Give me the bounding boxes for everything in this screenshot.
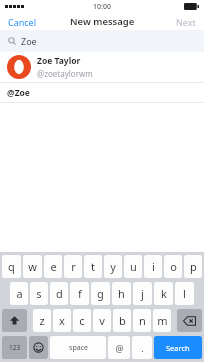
staticText: n [139,313,146,328]
button[interactable]: r [64,255,82,278]
button[interactable]: @Zoe [0,83,204,102]
button[interactable]: a [10,282,28,305]
staticText: e [50,259,57,274]
staticText: f [78,286,82,301]
button[interactable]: u [124,255,142,278]
button[interactable]: t [84,255,102,278]
staticText: @Zoe [7,87,30,99]
staticText: q [8,259,15,274]
button[interactable]: Next [168,14,204,30]
button[interactable]: j [133,282,152,305]
staticText: l [183,286,186,301]
staticText: New message [70,15,135,28]
button[interactable]: i [144,255,162,278]
button[interactable]: e [44,255,62,278]
staticText: Zoe [21,35,37,47]
staticText: z [39,313,45,328]
staticText: a [16,286,23,301]
staticText: o [170,259,177,274]
button[interactable]: b [113,309,131,332]
staticText: space [69,343,88,353]
staticText: x [59,313,65,328]
button[interactable]: p [184,255,202,278]
button[interactable]: Search [154,336,202,359]
staticText: @ [115,342,124,354]
button[interactable]: g [91,282,110,305]
button[interactable]: k [154,282,173,305]
staticText: 10:00 [93,2,111,12]
button[interactable]: Zoe [0,30,204,52]
button[interactable]: c [73,309,91,332]
staticText: w [28,259,37,274]
staticText: h [118,286,125,301]
button[interactable]: Cancel [0,14,45,30]
button[interactable]: z [33,309,51,332]
button[interactable]: h [112,282,131,305]
staticText: t [91,259,95,274]
button[interactable]: f [70,282,89,305]
staticText: 123 [9,343,21,352]
button[interactable]: y [104,255,122,278]
button[interactable]: v [93,309,111,332]
button[interactable]: . [132,336,152,359]
staticText: y [110,259,116,274]
button[interactable]: Zoe Taylor [0,52,204,82]
staticText: Cancel [8,16,37,28]
button[interactable]: 123 [2,336,27,359]
button[interactable]: q [2,255,21,278]
button[interactable]: l [175,282,194,305]
staticText: d [56,286,63,301]
button[interactable]: space [50,336,106,359]
button[interactable]: Shift [2,309,27,332]
button[interactable]: @ [108,336,130,359]
staticText: m [157,313,168,328]
staticText: b [119,313,126,328]
staticText: i [152,259,155,274]
staticText: p [190,259,197,274]
button[interactable]: x [53,309,71,332]
staticText: r [71,259,76,274]
staticText: v [99,313,105,328]
button[interactable]: m [153,309,171,332]
staticText: k [161,286,167,301]
button[interactable]: n [133,309,151,332]
staticText: g [97,286,104,301]
staticText: u [130,259,137,274]
staticText: c [79,313,85,328]
staticText: s [36,286,42,301]
staticText: . [141,342,144,354]
button[interactable]: s [30,282,48,305]
button[interactable]: o [164,255,182,278]
button[interactable]: Emoji [29,336,48,359]
button[interactable]: Backspace [177,309,202,332]
button[interactable]: d [50,282,68,305]
staticText: Next [176,16,196,28]
staticText: @zoetaylorwm [37,68,93,79]
button[interactable]: w [23,255,42,278]
staticText: Search [166,343,190,353]
staticText: j [141,286,144,301]
staticText: Zoe Taylor [37,55,81,67]
